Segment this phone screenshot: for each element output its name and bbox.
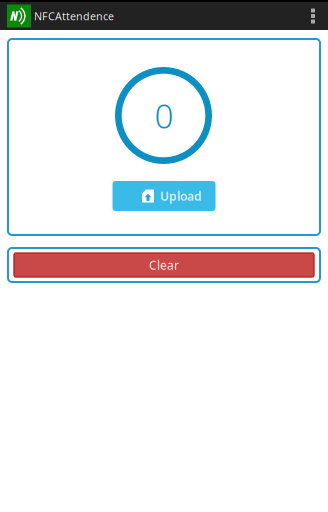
button[interactable]: More options <box>301 2 325 30</box>
staticText: Clear <box>149 257 179 273</box>
button[interactable]: Upload <box>112 181 215 211</box>
staticText: Upload <box>160 188 202 204</box>
button[interactable]: Clear <box>14 253 314 277</box>
staticText: NFCAttendence <box>34 9 114 23</box>
staticText: 0 <box>154 93 173 138</box>
